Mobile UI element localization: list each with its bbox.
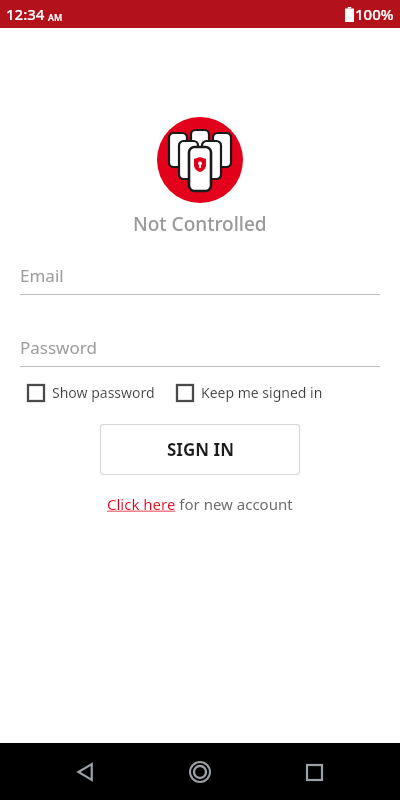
staticText: 12:34: [6, 4, 45, 24]
staticText: Email: [20, 264, 64, 287]
button[interactable]: Show password: [27, 383, 155, 402]
button[interactable]: SIGN IN: [101, 425, 299, 474]
button[interactable]: Password: [20, 336, 380, 367]
button[interactable]: Click here for new account: [107, 494, 293, 514]
button[interactable]: Email: [20, 264, 380, 295]
staticText: AM: [48, 11, 63, 23]
button[interactable]: Recent apps: [286, 744, 342, 800]
staticText: Password: [20, 336, 97, 359]
staticText: 100%: [355, 4, 394, 24]
staticText: Click here for new account: [107, 494, 293, 514]
button[interactable]: Home: [172, 744, 228, 800]
staticText: Show password: [52, 383, 155, 402]
staticText: Keep me signed in: [201, 383, 323, 402]
button[interactable]: Keep me signed in: [176, 383, 323, 402]
staticText: SIGN IN: [167, 438, 234, 461]
button[interactable]: Back: [58, 744, 114, 800]
staticText: Not Controlled: [133, 211, 267, 237]
